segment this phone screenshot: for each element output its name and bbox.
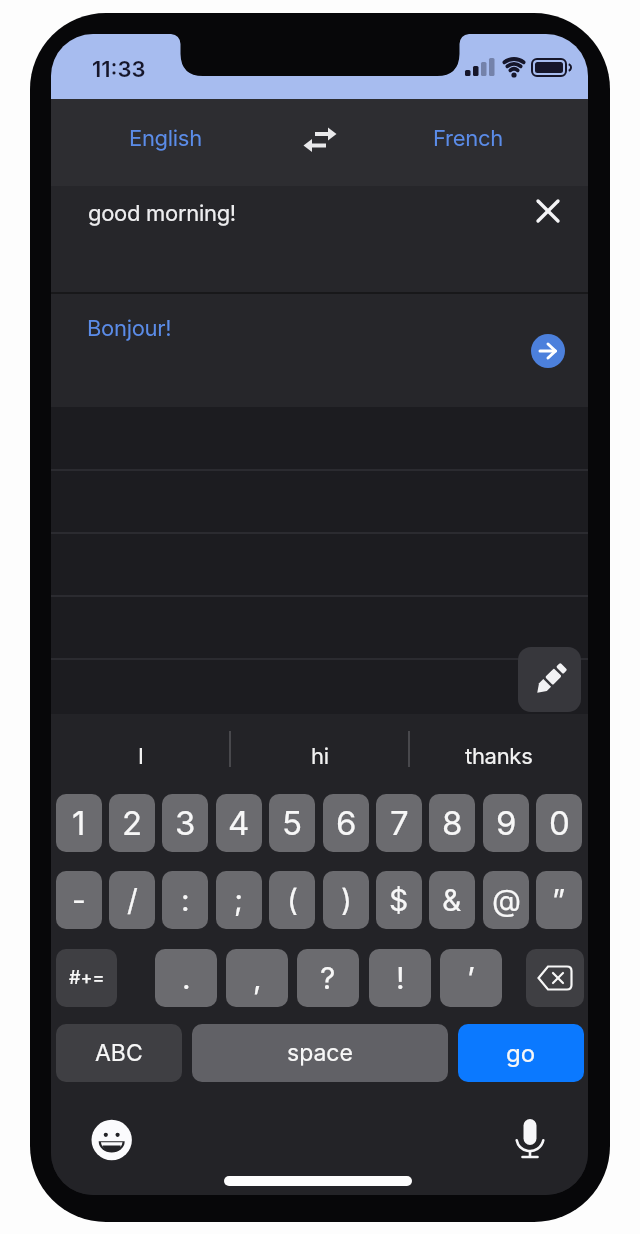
- staticText: ;: [234, 882, 244, 918]
- button[interactable]: ,: [226, 949, 288, 1007]
- button[interactable]: 9: [483, 794, 529, 852]
- button[interactable]: #+=: [56, 949, 117, 1007]
- staticText: ,: [253, 960, 262, 996]
- button[interactable]: ?: [297, 949, 359, 1007]
- staticText: 9: [496, 803, 517, 843]
- staticText: 4: [228, 803, 250, 843]
- staticText: ”: [552, 882, 566, 918]
- button[interactable]: thanks: [409, 714, 588, 791]
- button[interactable]: [89, 1117, 133, 1161]
- staticText: Bonjour!: [87, 315, 172, 342]
- staticText: &: [442, 882, 462, 918]
- button[interactable]: space: [192, 1024, 448, 1082]
- staticText: English: [129, 125, 202, 152]
- button[interactable]: go: [458, 1024, 584, 1082]
- button[interactable]: 7: [376, 794, 422, 852]
- button[interactable]: [526, 949, 584, 1007]
- staticText: 8: [442, 803, 463, 843]
- staticText: go: [506, 1039, 536, 1068]
- staticText: #+=: [69, 967, 105, 989]
- button[interactable]: 3: [162, 794, 208, 852]
- button[interactable]: English: [95, 116, 235, 160]
- button[interactable]: [301, 117, 354, 165]
- staticText: hi: [311, 743, 329, 770]
- button[interactable]: !: [369, 949, 431, 1007]
- staticText: 7: [390, 803, 409, 843]
- staticText: 11:33: [92, 56, 146, 83]
- staticText: French: [433, 125, 503, 152]
- button[interactable]: [528, 191, 568, 231]
- button[interactable]: :: [162, 871, 208, 929]
- staticText: /: [127, 882, 138, 918]
- button[interactable]: French: [398, 116, 538, 160]
- staticText: I: [138, 743, 144, 770]
- staticText: $: [389, 882, 409, 918]
- button[interactable]: [518, 647, 581, 712]
- button[interactable]: -: [56, 871, 102, 929]
- button[interactable]: 0: [536, 794, 582, 852]
- button[interactable]: ABC: [56, 1024, 182, 1082]
- staticText: ?: [320, 960, 336, 996]
- staticText: ’: [467, 960, 475, 996]
- button[interactable]: I: [51, 714, 230, 791]
- button[interactable]: 4: [216, 794, 262, 852]
- button[interactable]: /: [109, 871, 155, 929]
- staticText: thanks: [465, 743, 533, 770]
- button[interactable]: ”: [536, 871, 582, 929]
- button[interactable]: 2: [109, 794, 155, 852]
- staticText: 3: [175, 803, 196, 843]
- staticText: 2: [122, 803, 143, 843]
- button[interactable]: &: [429, 871, 475, 929]
- staticText: ABC: [95, 1039, 143, 1067]
- staticText: :: [181, 882, 190, 918]
- staticText: space: [287, 1039, 353, 1067]
- button[interactable]: ’: [440, 949, 502, 1007]
- button[interactable]: ): [323, 871, 369, 929]
- button[interactable]: 8: [429, 794, 475, 852]
- button[interactable]: $: [376, 871, 422, 929]
- button[interactable]: 1: [56, 794, 102, 852]
- staticText: 5: [282, 803, 303, 843]
- button[interactable]: 5: [269, 794, 315, 852]
- button[interactable]: @: [483, 871, 529, 929]
- button[interactable]: hi: [230, 714, 409, 791]
- staticText: ): [341, 882, 352, 918]
- staticText: 0: [549, 803, 570, 843]
- staticText: !: [396, 960, 405, 996]
- button[interactable]: [531, 334, 565, 368]
- staticText: good morning!: [88, 200, 236, 227]
- staticText: .: [182, 960, 191, 996]
- staticText: 1: [72, 803, 86, 843]
- button[interactable]: [508, 1117, 552, 1161]
- staticText: (: [287, 882, 298, 918]
- staticText: @: [492, 882, 521, 918]
- staticText: -: [72, 882, 86, 918]
- button[interactable]: (: [269, 871, 315, 929]
- button[interactable]: .: [155, 949, 217, 1007]
- button[interactable]: 6: [323, 794, 369, 852]
- button[interactable]: ;: [216, 871, 262, 929]
- staticText: 6: [336, 803, 357, 843]
